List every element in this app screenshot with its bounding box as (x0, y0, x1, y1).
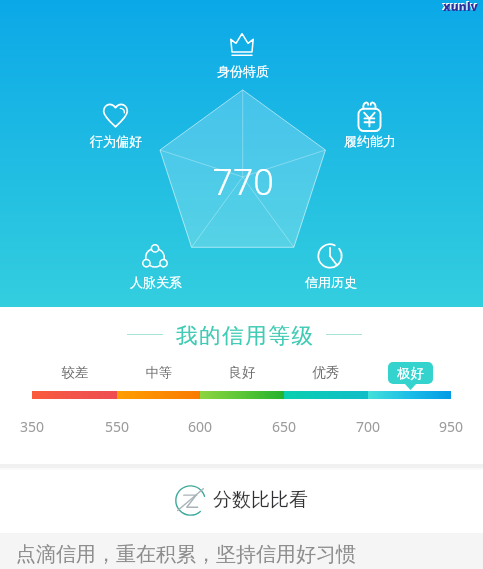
staticText: 600 (170, 417, 230, 436)
staticText: xunlv (442, 0, 477, 13)
staticText: 我的信用等级 (176, 322, 315, 346)
staticText: 人脉关系 (106, 274, 206, 290)
button[interactable]: 信用历史 (290, 233, 370, 279)
staticText: 700 (338, 417, 398, 436)
button[interactable]: 人脉关系 (115, 234, 195, 280)
staticText: 极好 (397, 365, 424, 382)
button[interactable]: 极好 (388, 362, 433, 384)
staticText: 良好 (212, 364, 272, 381)
staticText: 550 (87, 417, 147, 436)
button[interactable]: 分数比比看 (0, 467, 483, 533)
staticText: 信用历史 (281, 274, 381, 290)
staticText: xunlv (443, 0, 478, 14)
staticText: 优秀 (296, 364, 356, 381)
staticText: 行为偏好 (66, 133, 166, 149)
button[interactable]: 行为偏好 (75, 92, 155, 138)
staticText: 950 (421, 417, 481, 436)
staticText: 分数比比看 (213, 488, 308, 512)
button[interactable]: 身份特质 (202, 22, 282, 68)
staticText: 身份特质 (193, 63, 293, 79)
staticText: 较差 (45, 364, 105, 381)
staticText: 650 (254, 417, 314, 436)
staticText: 履约能力 (320, 133, 420, 149)
staticText: 中等 (129, 364, 189, 381)
staticText: 770 (163, 157, 323, 206)
button[interactable]: 履约能力 (329, 93, 409, 139)
staticText: 350 (2, 417, 62, 436)
staticText: 点滴信用，重在积累，坚持信用好习惯 (16, 542, 356, 567)
